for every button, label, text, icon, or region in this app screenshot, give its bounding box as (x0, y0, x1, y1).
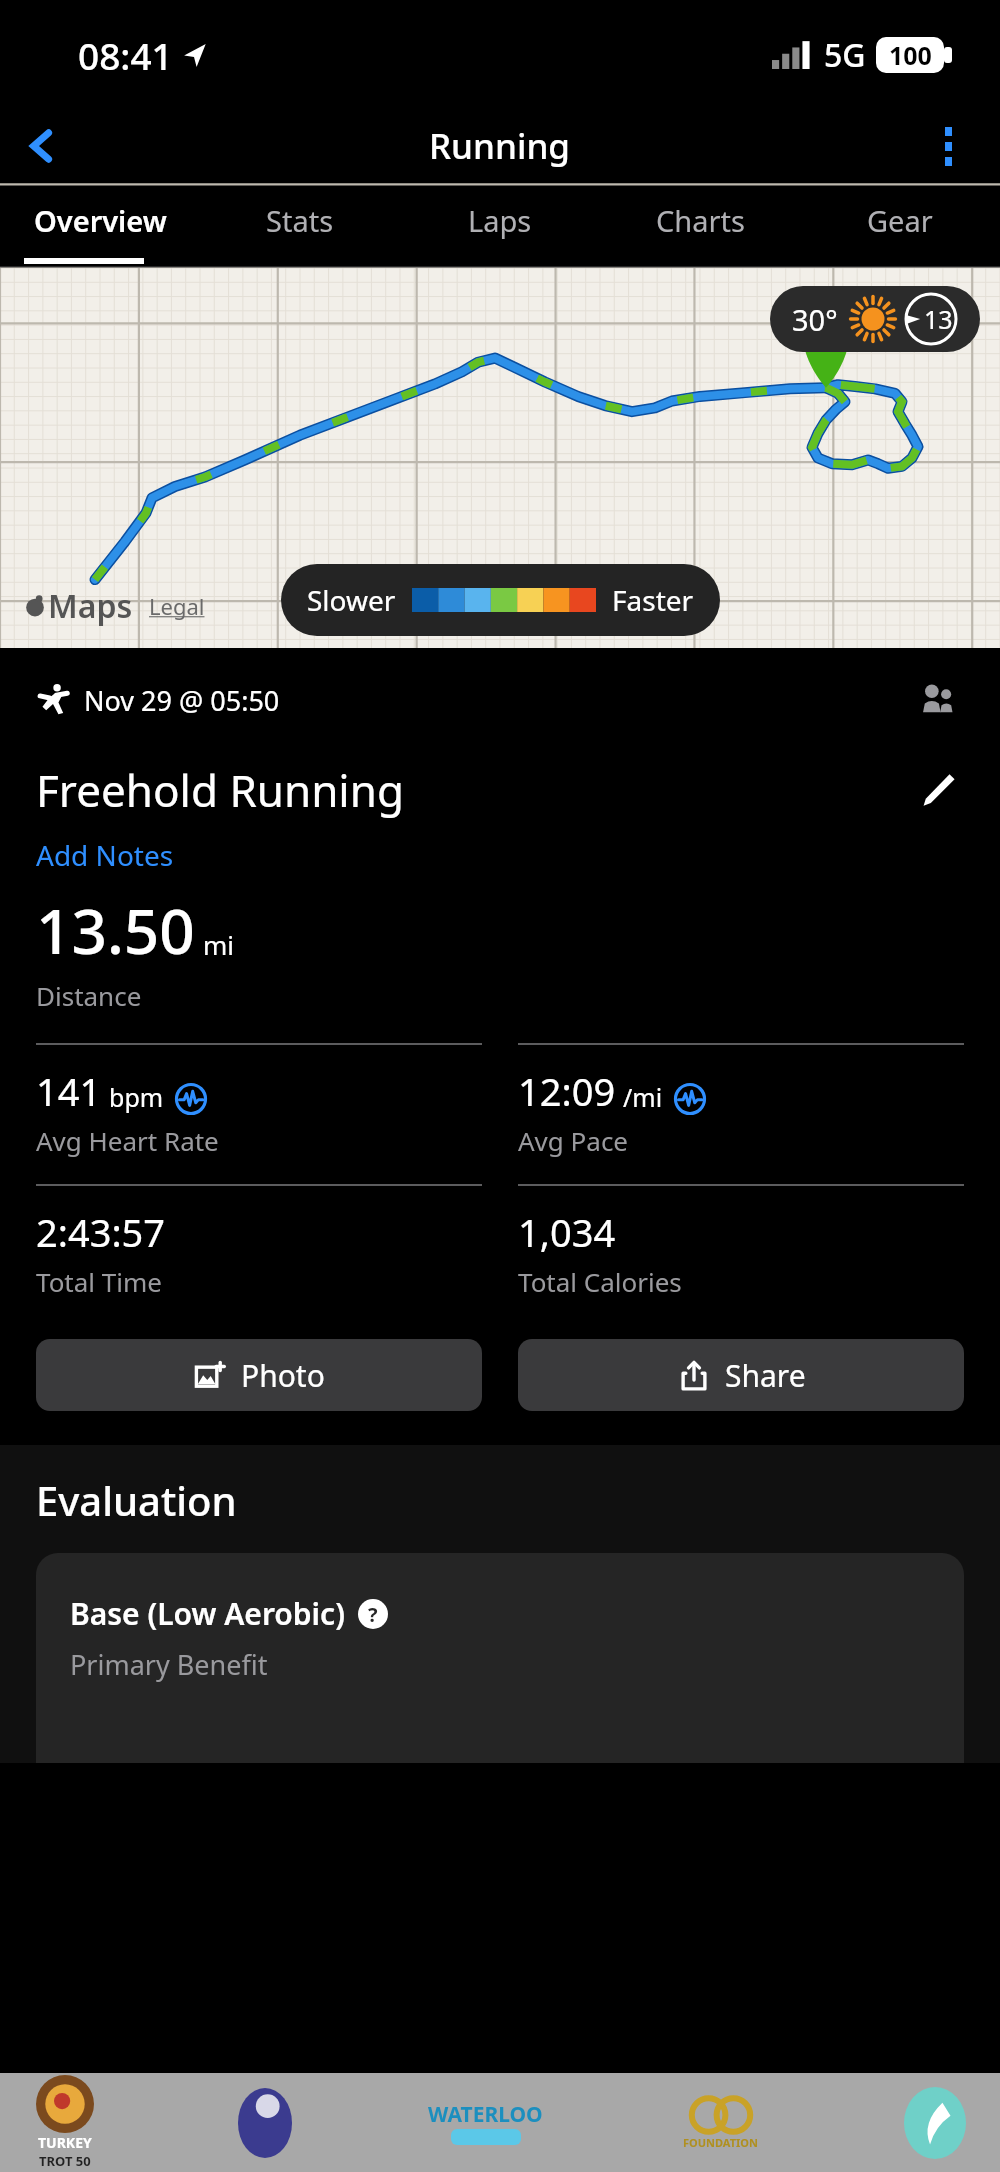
staticText: TURKEY (38, 2133, 92, 2152)
button[interactable]: Edit (912, 764, 964, 816)
button[interactable]: 141 (36, 1043, 482, 1158)
button[interactable]: Elite Feats (880, 2073, 990, 2172)
staticText: ? (368, 1601, 378, 1628)
staticText: 13.50 (36, 888, 195, 972)
staticText: Freehold Running (36, 760, 404, 820)
staticText: 1,034 (518, 1206, 616, 1258)
staticText: Photo (241, 1355, 325, 1396)
button[interactable]: Help (357, 1598, 389, 1630)
staticText: 2:43:57 (36, 1206, 166, 1258)
staticText: Laps (468, 201, 532, 240)
button[interactable]: Waterloo (410, 2073, 560, 2172)
button[interactable]: All Round Foods (210, 2073, 320, 2172)
staticText: Evaluation (36, 1473, 237, 1527)
staticText: 30° (792, 300, 838, 339)
staticText: Overview (34, 201, 167, 240)
staticText: 13 (924, 302, 953, 336)
staticText: WATERLOO (428, 2100, 543, 2129)
staticText: mi (203, 927, 235, 962)
staticText: Total Calories (518, 1264, 682, 1299)
staticText: FOUNDATION (683, 2135, 758, 2150)
staticText: Charts (656, 201, 745, 240)
staticText: 08:41 (78, 30, 173, 80)
staticText: Running (429, 122, 571, 170)
button[interactable]: Base (Low Aerobic) (36, 1553, 964, 1763)
staticText: Slower (307, 581, 396, 619)
button[interactable]: Slower (281, 564, 720, 636)
button[interactable]: 30° (770, 286, 980, 352)
staticText: 5G (824, 33, 866, 77)
button[interactable]: Photo (36, 1339, 482, 1411)
button[interactable]: Turkey Trot 50 (10, 2073, 120, 2172)
staticText: bpm (109, 1080, 164, 1114)
staticText: Base (Low Aerobic) (70, 1593, 345, 1634)
staticText: Gear (867, 201, 933, 240)
button[interactable]: Add Notes (36, 836, 174, 874)
staticText: Distance (36, 978, 142, 1013)
staticText: Total Time (36, 1264, 162, 1299)
staticText: Primary Benefit (70, 1646, 268, 1683)
staticText: Faster (612, 581, 694, 619)
staticText: Maps (48, 584, 133, 628)
button[interactable]: Charts (600, 182, 800, 258)
staticText: Avg Pace (518, 1123, 629, 1158)
button[interactable]: 2:43:57 (36, 1184, 482, 1299)
button[interactable]: Legal (149, 591, 205, 621)
staticText: 100 (889, 38, 932, 72)
button[interactable]: Stats (200, 182, 400, 258)
staticText: 141 (36, 1065, 102, 1117)
button[interactable]: 12:09 (518, 1043, 964, 1158)
button[interactable]: Laps (400, 182, 600, 258)
button[interactable]: Gear (800, 182, 1000, 258)
button[interactable]: Overview (0, 182, 200, 258)
button[interactable]: 1,034 (518, 1184, 964, 1299)
staticText: 12:09 (518, 1065, 616, 1117)
button[interactable]: More options (920, 118, 976, 174)
button[interactable]: Foundation (650, 2073, 790, 2172)
button[interactable]: Back (14, 118, 70, 174)
staticText: Stats (266, 201, 334, 240)
staticText: TROT 50 (39, 2152, 91, 2170)
staticText: Share (725, 1355, 806, 1396)
staticText: Nov 29 @ 05:50 (84, 682, 280, 719)
staticText: Avg Heart Rate (36, 1123, 219, 1158)
button[interactable]: Participants (912, 674, 964, 726)
button[interactable]: Share (518, 1339, 964, 1411)
staticText: /mi (623, 1080, 663, 1114)
